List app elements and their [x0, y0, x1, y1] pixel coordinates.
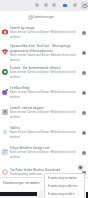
staticText: Kann immer Daten auf dieser Website lese…: [10, 53, 78, 61]
button[interactable]: Pin extension: [80, 49, 87, 56]
button[interactable]: FireBox Relay: [0, 82, 88, 102]
button[interactable]: YouTube Video Blocker Download: [0, 162, 88, 182]
staticText: Eurora - Die Summenzeile offered: [10, 66, 61, 70]
button[interactable]: Pin extension: [80, 149, 87, 156]
button[interactable]: Erweiterungen verwalten: [0, 178, 88, 187]
button[interactable]: Bookmark: [50, 1, 58, 9]
staticText: Tabliss: [10, 126, 20, 130]
button[interactable]: Erweiterung verwalten: [44, 174, 85, 182]
staticText: Kann immer Daten auf dieser Website lese…: [10, 90, 78, 98]
button[interactable]: Pin extension: [80, 69, 87, 76]
button[interactable]: Pin extension: [80, 89, 87, 96]
staticText: Search by image: [10, 26, 35, 30]
button[interactable]: SponsorBlock for YouTube - Überspringe g…: [0, 42, 88, 62]
button[interactable]: Sync: [61, 1, 69, 9]
staticText: Kann immer Daten auf dieser Website lese…: [10, 130, 78, 138]
button[interactable]: Back: [33, 1, 41, 9]
staticText: YouTube Video Blocker Download: [10, 168, 61, 172]
staticText: Erweiterungen verwalten: [3, 181, 40, 185]
staticText: Lastell - talentt.abgase: [10, 106, 44, 110]
button[interactable]: Tokyo Weather Image tool: [0, 142, 88, 162]
button[interactable]: Eurora - Die Summenzeile offered: [0, 62, 88, 82]
staticText: Erweiterung melden: [48, 192, 75, 196]
staticText: Kann immer Daten auf dieser Website lese…: [10, 30, 78, 38]
staticText: Erweiterungen: [33, 15, 55, 19]
button[interactable]: Search by image: [0, 22, 88, 42]
button[interactable]: Lastell - talentt.abgase: [0, 102, 88, 122]
staticText: Kann immer Daten auf dieser Website lese…: [10, 70, 78, 78]
button[interactable]: Extensions: [80, 1, 88, 9]
button[interactable]: Erweiterung melden: [44, 190, 85, 198]
staticText: Erweiterung entfernen: [48, 184, 78, 188]
staticText: Tokyo Weather Image tool: [10, 146, 50, 150]
button[interactable]: Pin extension: [80, 109, 87, 116]
button[interactable]: Erweiterung entfernen: [44, 182, 85, 190]
staticText: FireBox Relay: [10, 86, 30, 90]
staticText: Kann immer Daten auf dieser Website lese…: [10, 110, 78, 118]
button[interactable]: Pin extension: [80, 169, 87, 176]
staticText: Trackkeeping extension: [10, 172, 43, 176]
button[interactable]: Tabliss: [0, 122, 88, 142]
button[interactable]: Pin extension: [80, 129, 87, 136]
staticText: SponsorBlock for YouTube - Überspringe g…: [10, 44, 78, 53]
button[interactable]: More: [71, 1, 79, 9]
staticText: Kann immer Daten auf dieser Website lese…: [10, 150, 78, 158]
staticText: Erweiterung verwalten: [48, 176, 78, 180]
button[interactable]: Pin extension: [80, 29, 87, 36]
button[interactable]: Profile: [42, 1, 50, 9]
button[interactable]: Pin extension: [77, 164, 84, 171]
